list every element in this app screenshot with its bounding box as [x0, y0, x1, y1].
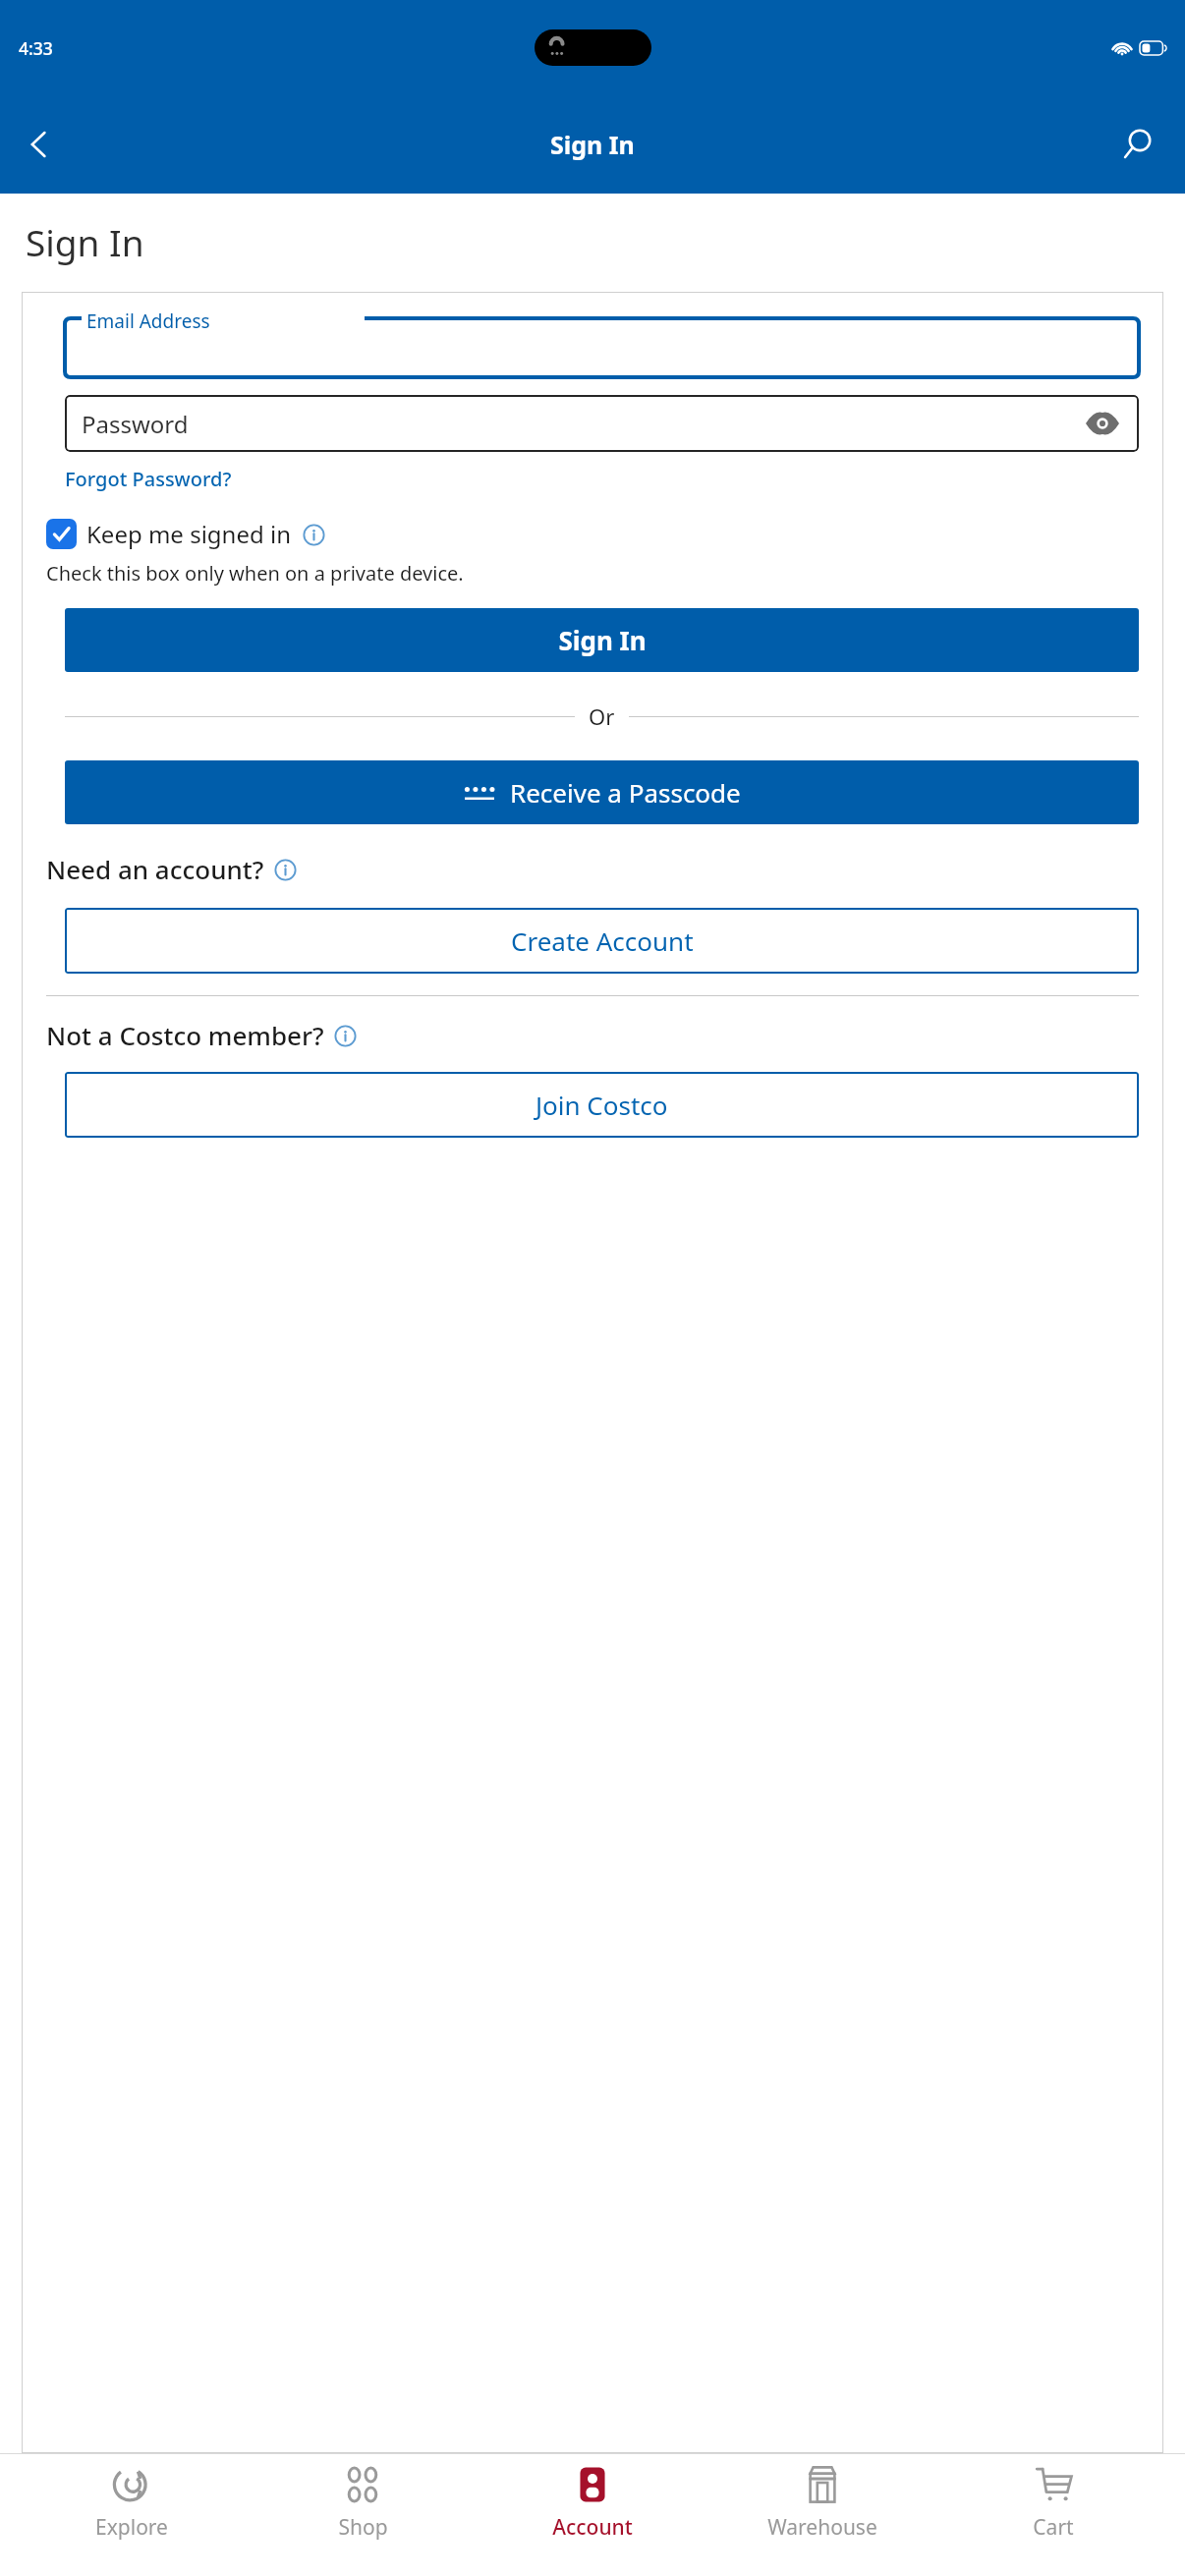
staticText: Shop [338, 2513, 388, 2542]
button[interactable]: Sign In [65, 608, 1139, 672]
staticText: Warehouse [767, 2513, 877, 2542]
button[interactable]: Back [8, 113, 71, 176]
button[interactable]: Password [65, 395, 1139, 452]
staticText: Email Address [86, 308, 210, 334]
button[interactable]: More information [332, 1023, 358, 1048]
staticText: Sign In [26, 217, 144, 266]
staticText: Not a Costco member? [46, 1018, 324, 1052]
button[interactable]: Warehouse [724, 2454, 921, 2576]
staticText: Need an account? [46, 852, 264, 886]
button[interactable]: Receive a Passcode [65, 760, 1139, 824]
button[interactable]: Create Account [65, 908, 1139, 974]
button[interactable]: Account [494, 2454, 691, 2576]
staticText: Sign In [550, 128, 635, 161]
staticText: Check this box only when on a private de… [46, 560, 464, 587]
button[interactable]: Cart [955, 2454, 1152, 2576]
button[interactable]: Show password [1080, 401, 1125, 446]
staticText: Password [82, 408, 189, 440]
staticText: Cart [1033, 2513, 1074, 2542]
button[interactable]: More information [301, 522, 326, 547]
button[interactable]: More information [272, 857, 298, 882]
staticText: 4:33 [19, 36, 53, 60]
staticText: Join Costco [536, 1088, 668, 1122]
staticText: Forgot Password? [65, 466, 232, 492]
staticText: Receive a Passcode [510, 775, 741, 810]
button[interactable]: Explore [33, 2454, 230, 2576]
button[interactable]: Keep me signed in [46, 518, 326, 550]
button[interactable]: Shop [264, 2454, 461, 2576]
button[interactable]: Email Address [65, 318, 1139, 377]
staticText: Account [552, 2513, 633, 2542]
staticText: Keep me signed in [86, 518, 291, 550]
staticText: Explore [95, 2513, 168, 2542]
button[interactable]: Forgot Password? [65, 462, 232, 496]
button[interactable]: Search [1108, 115, 1167, 174]
button[interactable]: Join Costco [65, 1072, 1139, 1138]
staticText: Or [589, 701, 615, 731]
staticText: Sign In [558, 623, 647, 657]
staticText: Create Account [511, 924, 694, 958]
